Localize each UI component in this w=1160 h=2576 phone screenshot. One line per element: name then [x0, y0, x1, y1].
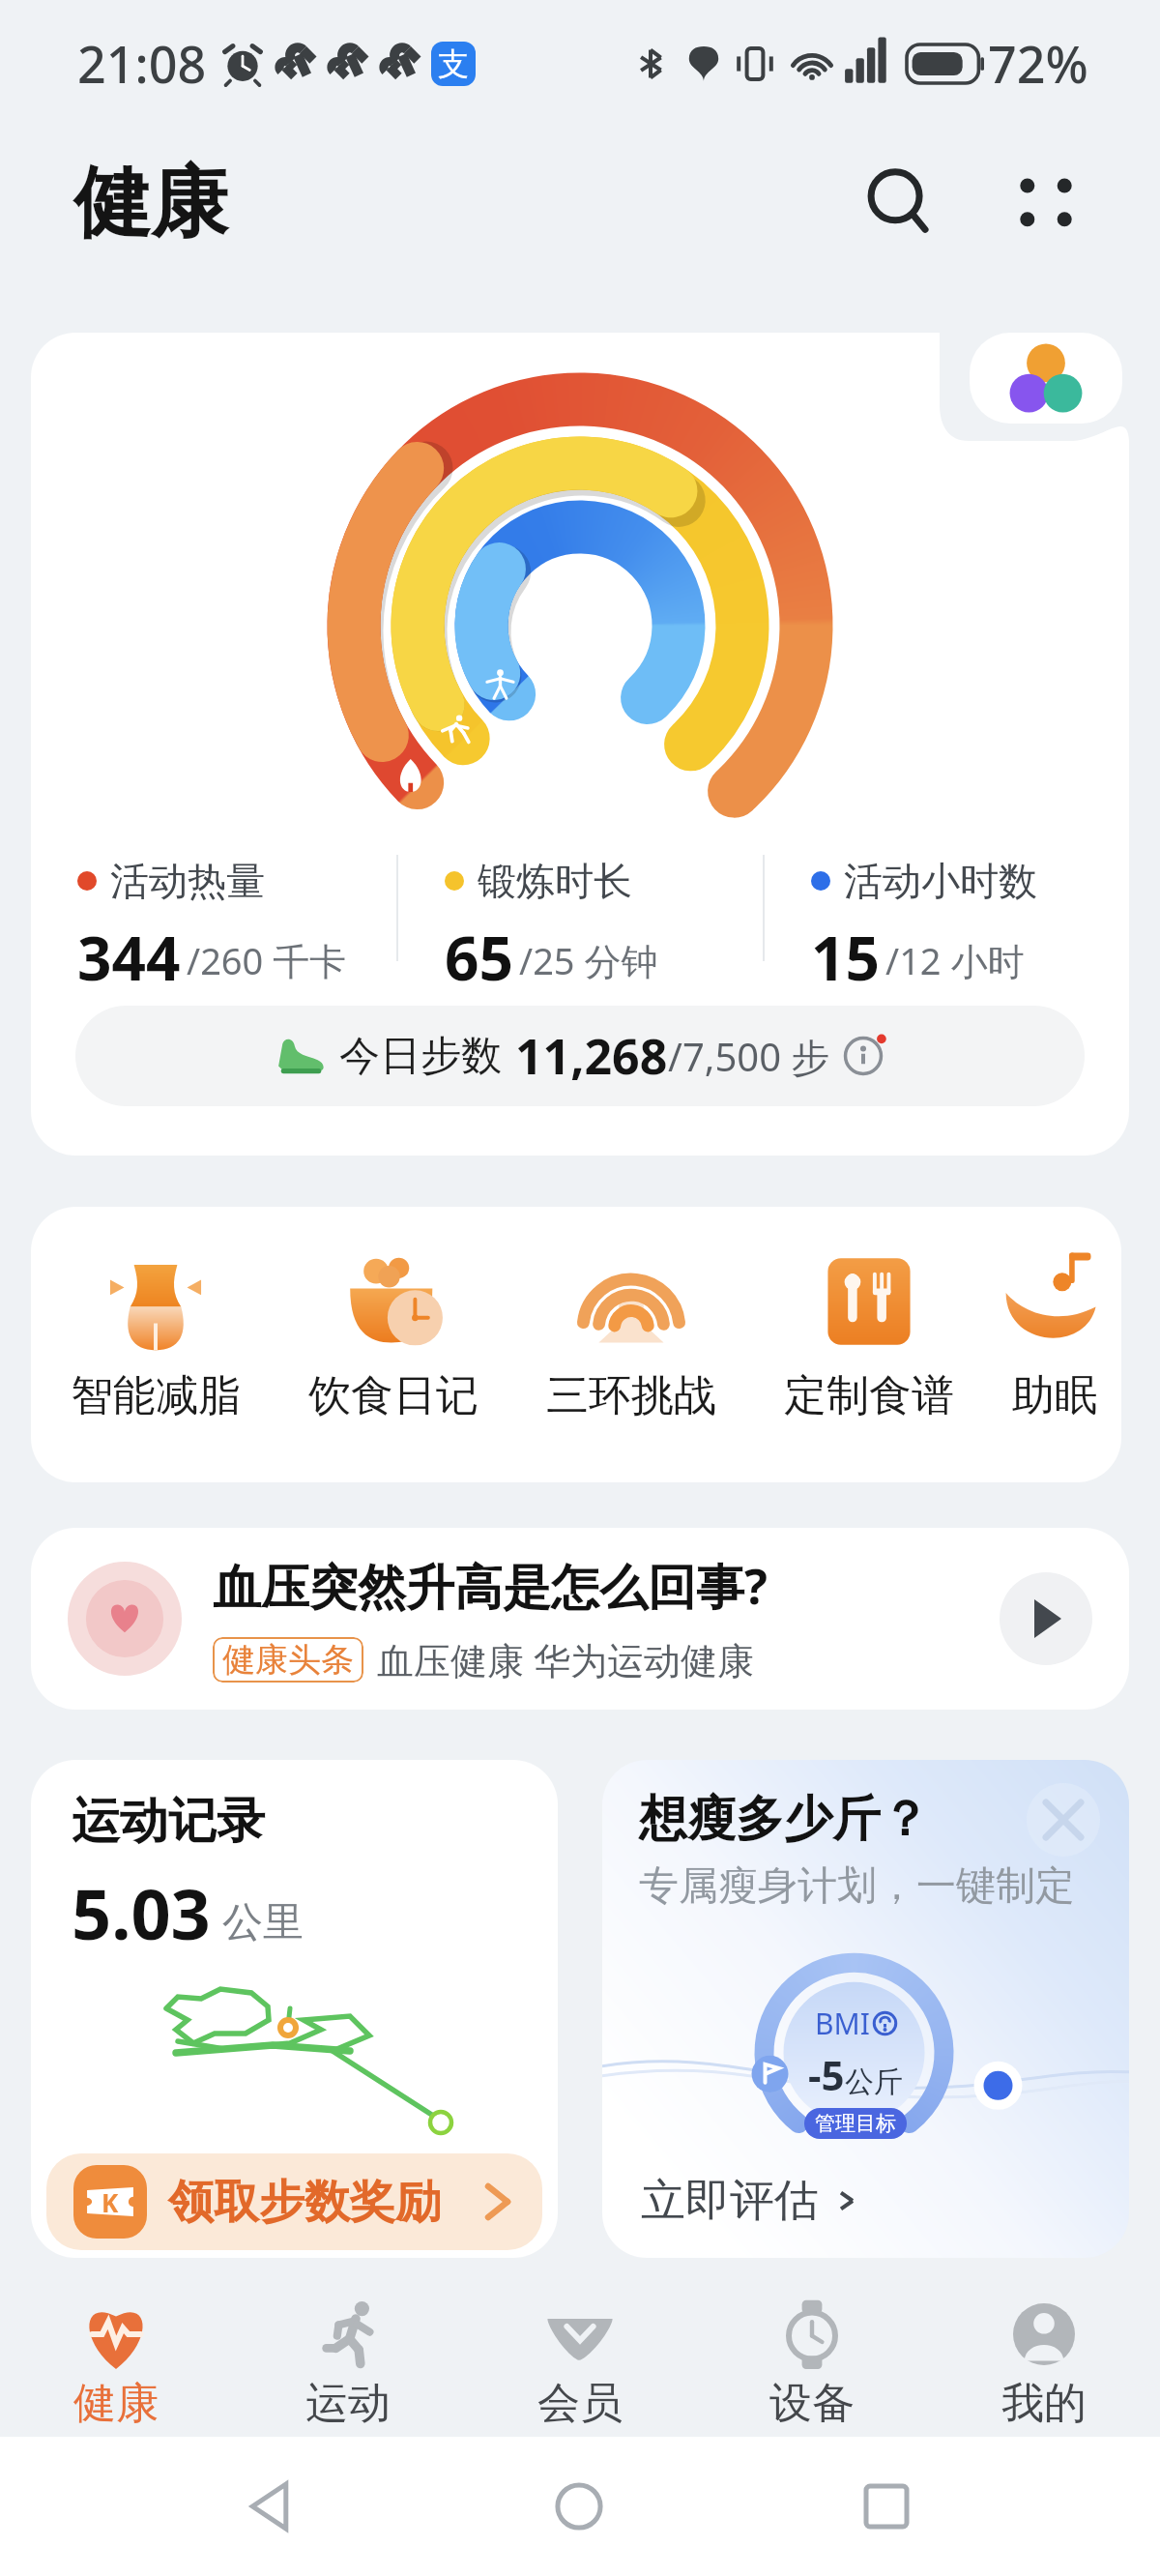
button[interactable]: Back [239, 2473, 306, 2540]
staticText: 65 [445, 917, 513, 990]
button[interactable]: 我的 [928, 2282, 1160, 2437]
staticText: 运动记录 [72, 1791, 265, 1852]
staticText: 助眠 [1012, 1369, 1097, 1422]
button[interactable]: Close [1027, 1783, 1100, 1857]
button[interactable]: 三环挑战 [512, 1207, 750, 1482]
staticText: 活动热量 [110, 857, 265, 905]
staticText: 健康 [73, 155, 228, 252]
button[interactable]: 智能减脂 [37, 1207, 275, 1482]
staticText: 定制食谱 [784, 1369, 954, 1422]
button[interactable]: 运动 [232, 2282, 464, 2437]
button[interactable]: Play [1000, 1572, 1092, 1665]
button[interactable]: 设备 [696, 2282, 928, 2437]
button[interactable]: 运动记录 [31, 1760, 558, 2258]
staticText: 运动 [305, 2377, 391, 2430]
staticText: 我的 [1001, 2377, 1087, 2430]
staticText: 专属瘦身计划，一键制定 [639, 1861, 1075, 1912]
button[interactable]: Home [545, 2473, 613, 2540]
staticText: 管理目标 [815, 2111, 896, 2136]
staticText: 11,268 [515, 1023, 668, 1089]
staticText: /260 千卡 [187, 935, 347, 985]
button[interactable]: 健康 [0, 2282, 232, 2437]
staticText: 公斤 [845, 2064, 903, 2100]
staticText: 立即评估 [641, 2173, 819, 2229]
staticText: 344 [77, 917, 181, 990]
button[interactable]: 想瘦多少斤？ [602, 1760, 1129, 2258]
button[interactable]: 今日步数 [75, 1006, 1085, 1106]
staticText: 今日步数 [339, 1031, 502, 1082]
staticText: BMI [815, 2004, 870, 2043]
staticText: 公里 [222, 1897, 304, 1948]
staticText: 设备 [769, 2377, 855, 2430]
staticText: 想瘦多少斤？ [639, 1789, 929, 1850]
staticText: /7,500 步 [668, 1030, 830, 1083]
staticText: 支 [438, 44, 469, 83]
staticText: 活动小时数 [844, 857, 1037, 905]
staticText: 会员 [537, 2377, 623, 2430]
staticText: 饮食日记 [308, 1369, 478, 1422]
button[interactable]: 助眠 [988, 1207, 1121, 1482]
staticText: 血压突然升高是怎么回事? [213, 1553, 768, 1619]
staticText: /12 小时 [885, 935, 1025, 985]
staticText: 三环挑战 [546, 1369, 716, 1422]
staticText: -5 [808, 2047, 845, 2102]
staticText: 智能减脂 [71, 1369, 241, 1422]
staticText: 健康头条 [222, 1639, 354, 1681]
staticText: 领取步数奖励 [168, 2174, 441, 2231]
staticText: 健康 [73, 2377, 159, 2430]
button[interactable]: Search [853, 153, 953, 253]
staticText: 21:08 [77, 29, 207, 98]
button[interactable]: 定制食谱 [750, 1207, 988, 1482]
staticText: /25 分钟 [519, 935, 658, 985]
button[interactable]: K [46, 2153, 542, 2250]
button[interactable]: More options [996, 153, 1096, 253]
button[interactable]: 饮食日记 [275, 1207, 512, 1482]
staticText: K [101, 2185, 119, 2219]
staticText: 15 [811, 917, 880, 990]
staticText: 血压健康 华为运动健康 [377, 1634, 754, 1684]
staticText: 72% [988, 29, 1088, 98]
staticText: 锻炼时长 [478, 857, 632, 905]
button[interactable]: 血压突然升高是怎么回事? [31, 1528, 1129, 1710]
button[interactable]: Ring categories [970, 333, 1122, 424]
button[interactable]: Recents [853, 2473, 920, 2540]
button[interactable]: 会员 [464, 2282, 696, 2437]
staticText: 5.03 [72, 1865, 211, 1960]
